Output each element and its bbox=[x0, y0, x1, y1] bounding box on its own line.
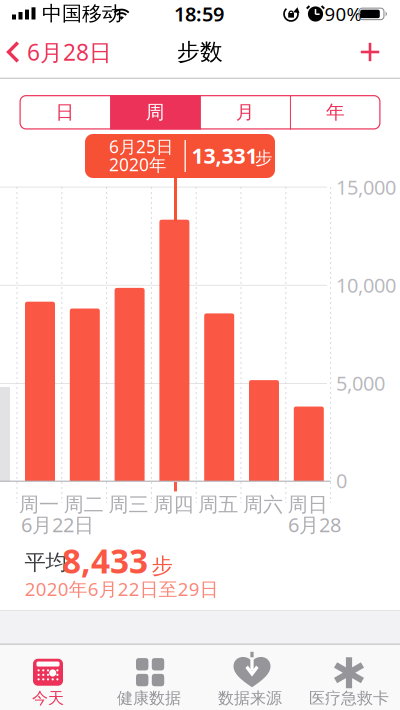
button[interactable]: 医疗急救卡 bbox=[300, 645, 400, 710]
staticText: 13,331 bbox=[191, 141, 257, 170]
staticText: 5,000 bbox=[336, 370, 385, 396]
staticText: 步 bbox=[255, 147, 272, 169]
staticText: 15,000 bbox=[336, 174, 396, 200]
staticText: 0 bbox=[336, 467, 347, 494]
staticText: 2020年6月22日至29日 bbox=[25, 576, 219, 601]
button[interactable]: 6月28日 bbox=[5, 37, 129, 67]
staticText: 周二 bbox=[64, 492, 104, 517]
staticText: 8,433 bbox=[62, 538, 148, 583]
button[interactable]: 月 bbox=[200, 95, 290, 129]
staticText: 6月28日 bbox=[27, 37, 112, 67]
staticText: 6月28 bbox=[288, 511, 341, 538]
staticText: 周日 bbox=[288, 492, 328, 517]
button[interactable]: 年 bbox=[290, 95, 380, 129]
staticText: 6月22日 bbox=[21, 511, 94, 538]
staticText: 周三 bbox=[109, 492, 149, 517]
button[interactable]: 数据来源 bbox=[200, 645, 300, 710]
staticText: 步 bbox=[151, 553, 172, 579]
staticText: 数据来源 bbox=[218, 688, 282, 708]
button[interactable]: 周 bbox=[110, 95, 200, 129]
staticText: 医疗急救卡 bbox=[309, 688, 389, 708]
staticText: 周 bbox=[146, 101, 165, 124]
staticText: 年 bbox=[326, 101, 345, 124]
staticText: 周六 bbox=[243, 492, 283, 517]
staticText: 18:59 bbox=[174, 0, 224, 27]
button[interactable]: 健康数据 bbox=[100, 645, 200, 710]
staticText: 月 bbox=[236, 101, 255, 124]
staticText: 周五 bbox=[198, 492, 238, 517]
staticText: 2020年 bbox=[109, 153, 166, 176]
button[interactable]: 添加数据点 bbox=[355, 37, 385, 67]
staticText: 步数 bbox=[177, 38, 223, 66]
staticText: 6月25日 bbox=[109, 135, 173, 158]
button[interactable]: 日 bbox=[20, 95, 110, 129]
button[interactable]: 今天 bbox=[0, 645, 100, 710]
staticText: 周一 bbox=[19, 492, 59, 517]
staticText: 10,000 bbox=[336, 272, 396, 298]
staticText: 今天 bbox=[32, 688, 64, 708]
staticText: 90% bbox=[324, 1, 362, 26]
staticText: 日 bbox=[55, 101, 74, 124]
staticText: 平均 bbox=[24, 549, 66, 576]
staticText: 健康数据 bbox=[117, 688, 181, 708]
staticText: 中国移动 bbox=[42, 1, 122, 26]
staticText: 周四 bbox=[153, 492, 193, 517]
